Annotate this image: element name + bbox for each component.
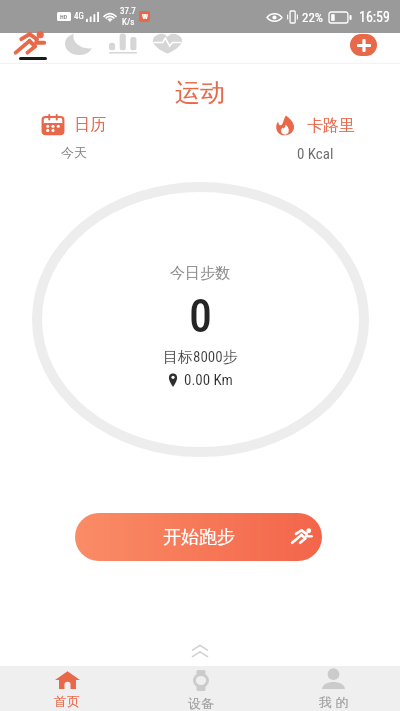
staticText: 设备 [188,695,214,711]
staticText: 16:59 [359,9,390,25]
button[interactable]: 日历 [42,115,106,135]
staticText: HD [60,13,68,20]
staticText: 4G [74,11,84,22]
staticText: 首页 [54,693,80,709]
staticText: 开始跑步 [163,526,235,549]
staticText: 卡路里 [307,116,355,136]
button[interactable]: 开始跑步 [75,513,322,561]
button[interactable]: Statistics [102,33,144,64]
button[interactable]: 设备 [134,669,267,711]
staticText: W [142,12,148,21]
staticText: 我 的 [319,693,349,711]
button[interactable]: 卡路里 [275,115,355,136]
staticText: 0 [189,289,212,343]
staticText: 今天 [61,144,87,160]
staticText: 22% [302,10,324,25]
staticText: 运动 [0,77,400,108]
button[interactable]: Sport [10,33,54,64]
button[interactable]: Add [350,34,377,56]
button[interactable]: Heart rate [146,33,188,64]
staticText: 37.7 [120,6,136,17]
button[interactable]: 我 的 [267,669,400,711]
button[interactable]: 首页 [0,669,134,711]
staticText: 日历 [74,115,106,135]
staticText: 0 Kcal [297,145,334,163]
staticText: 0.00 Km [184,371,233,389]
staticText: 目标8000步 [163,348,238,367]
button[interactable]: Expand [184,641,216,661]
button[interactable]: Sleep [58,33,100,64]
staticText: K/s [122,17,135,28]
staticText: 今日步数 [170,264,230,283]
